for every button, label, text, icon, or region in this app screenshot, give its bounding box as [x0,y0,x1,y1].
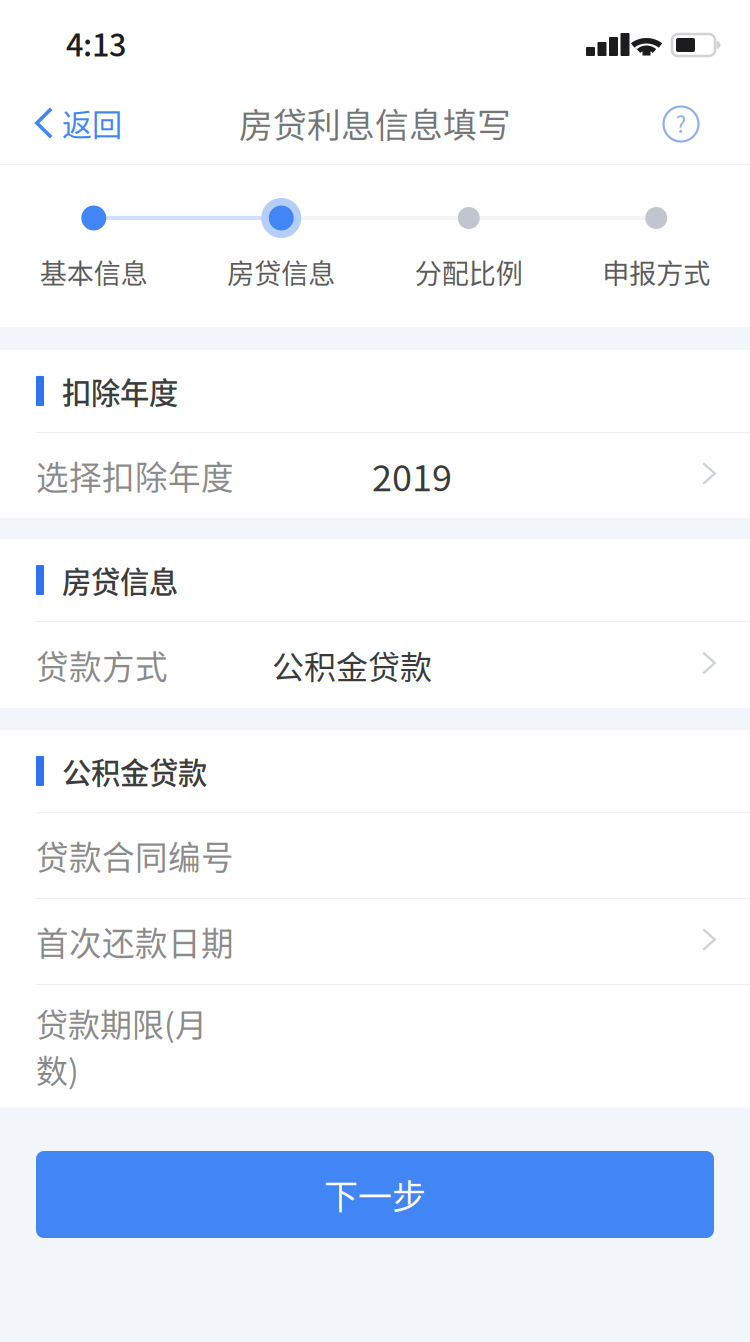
staticText: 扣除年度 [62,370,178,412]
staticText: 选择扣除年度 [36,452,234,499]
staticText: 下一步 [324,1170,426,1219]
staticText: 公积金贷款 [272,642,432,688]
staticText: 公积金贷款 [62,750,207,792]
staticText: 分配比例 [415,252,523,292]
button[interactable]: 贷款期限(月 数) [0,985,750,1107]
button[interactable]: 贷款合同编号 [0,813,750,898]
button[interactable]: 贷款方式 [0,622,750,708]
button[interactable]: 返回 [0,87,142,164]
staticText: 申报方式 [602,252,710,292]
button[interactable]: 下一步 [36,1151,714,1238]
staticText: 基本信息 [40,252,148,292]
staticText: 房贷信息 [227,252,335,292]
staticText: 首次还款日期 [36,918,234,965]
staticText: 返回 [62,101,122,145]
button[interactable]: 选择扣除年度 [0,433,750,518]
staticText: 贷款期限(月 数) [36,1000,207,1092]
button[interactable]: 首次还款日期 [0,899,750,984]
staticText: 贷款方式 [36,641,168,688]
staticText: 房贷利息信息填写 [239,99,511,147]
staticText: 2019 [372,449,452,501]
staticText: 房贷信息 [62,559,178,601]
staticText: 贷款合同编号 [36,832,234,879]
button[interactable]: Help [644,87,750,165]
staticText: 4:13 [66,21,126,65]
staticText: ? [675,107,686,139]
